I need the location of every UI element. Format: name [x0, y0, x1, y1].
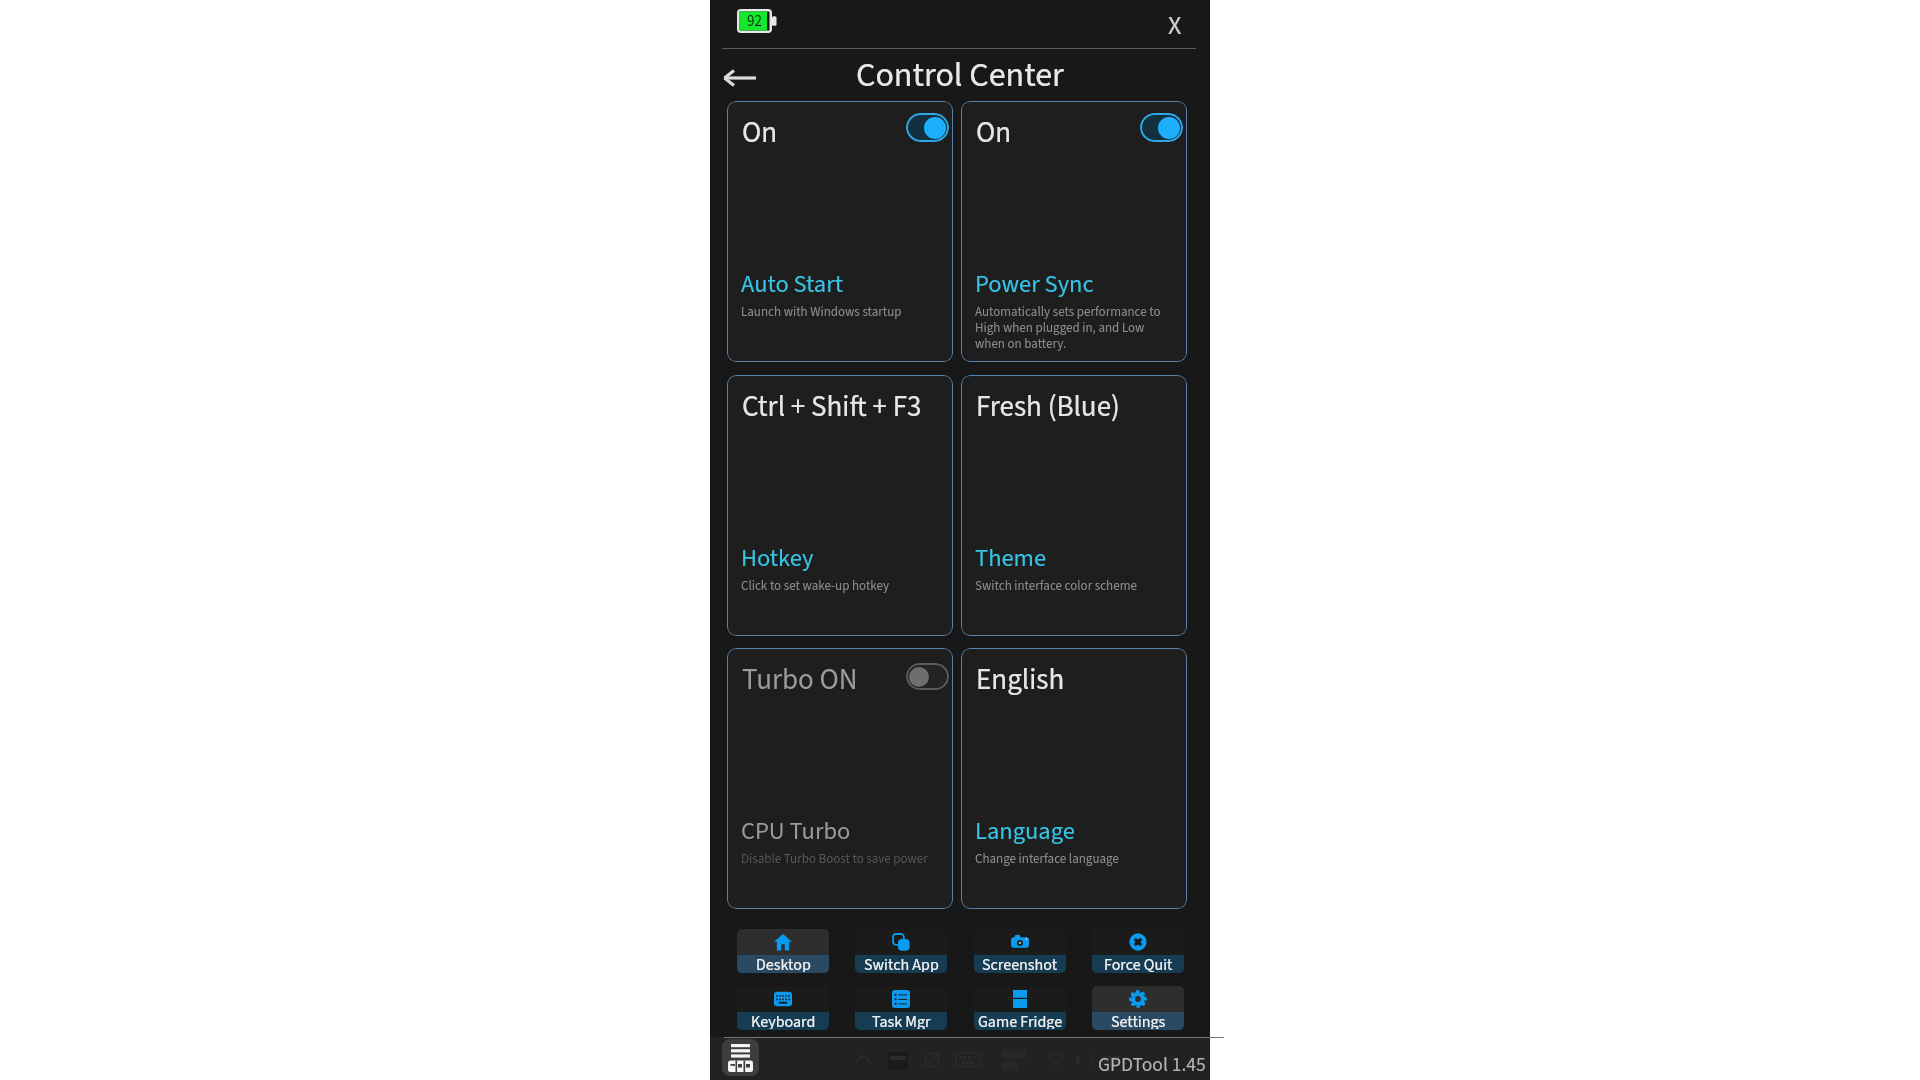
staticText: Force Quit — [1104, 954, 1173, 972]
button[interactable]: Turbo ON — [727, 648, 953, 909]
staticText: Click to set wake-up hotkey — [741, 577, 890, 596]
staticText: Power Sync — [975, 267, 1094, 302]
staticText: Change interface language — [975, 850, 1119, 869]
staticText: Auto Start — [741, 267, 843, 302]
button[interactable]: Ctrl + Shift + F3 — [727, 375, 953, 636]
staticText: English — [976, 659, 1065, 700]
staticText: Switch interface color scheme — [975, 577, 1137, 596]
staticText: 92 — [747, 11, 762, 32]
button[interactable]: Switch on — [1140, 113, 1183, 142]
button[interactable]: Task Mgr — [855, 986, 947, 1030]
staticText: Switch App — [864, 954, 939, 972]
staticText: Desktop — [756, 954, 811, 972]
button[interactable]: GPD — [722, 1039, 759, 1076]
button[interactable]: On — [961, 101, 1187, 362]
button[interactable]: Switch off — [906, 663, 949, 690]
staticText: Keyboard — [751, 1011, 816, 1029]
staticText: Hotkey — [741, 541, 814, 576]
button[interactable]: Force Quit — [1092, 929, 1184, 973]
staticText: Ctrl + Shift + F3 — [742, 386, 922, 427]
button[interactable]: English — [961, 648, 1187, 909]
staticText: Task Mgr — [872, 1011, 931, 1029]
button[interactable]: Fresh (Blue) — [961, 375, 1187, 636]
button[interactable]: Back — [719, 63, 759, 93]
button[interactable]: Switch App — [855, 929, 947, 973]
staticText: CPU Turbo — [741, 814, 851, 849]
staticText: Disable Turbo Boost to save power — [741, 850, 928, 869]
button[interactable]: Screenshot — [974, 929, 1066, 973]
staticText: Language — [975, 814, 1075, 849]
staticText: Control Center — [856, 51, 1064, 99]
staticText: X — [1168, 7, 1182, 37]
staticText: Settings — [1111, 1011, 1166, 1029]
button[interactable]: Desktop — [737, 929, 829, 973]
button[interactable]: Close — [1160, 7, 1190, 37]
button[interactable]: On — [727, 101, 953, 362]
button[interactable]: Keyboard — [737, 986, 829, 1030]
button[interactable]: Settings — [1092, 986, 1184, 1030]
staticText: Launch with Windows startup — [741, 303, 902, 322]
staticText: Automatically sets performance to High w… — [975, 303, 1169, 353]
staticText: Game Fridge — [978, 1011, 1063, 1029]
staticText: On — [976, 112, 1012, 153]
staticText: GPDTool 1.45 — [1098, 1051, 1206, 1079]
button[interactable]: Game Fridge — [974, 986, 1066, 1030]
staticText: On — [742, 112, 778, 153]
staticText: Turbo ON — [742, 659, 858, 700]
staticText: Screenshot — [982, 954, 1058, 972]
staticText: Theme — [975, 541, 1047, 576]
staticText: Fresh (Blue) — [976, 386, 1120, 427]
button[interactable]: Switch on — [906, 113, 949, 142]
